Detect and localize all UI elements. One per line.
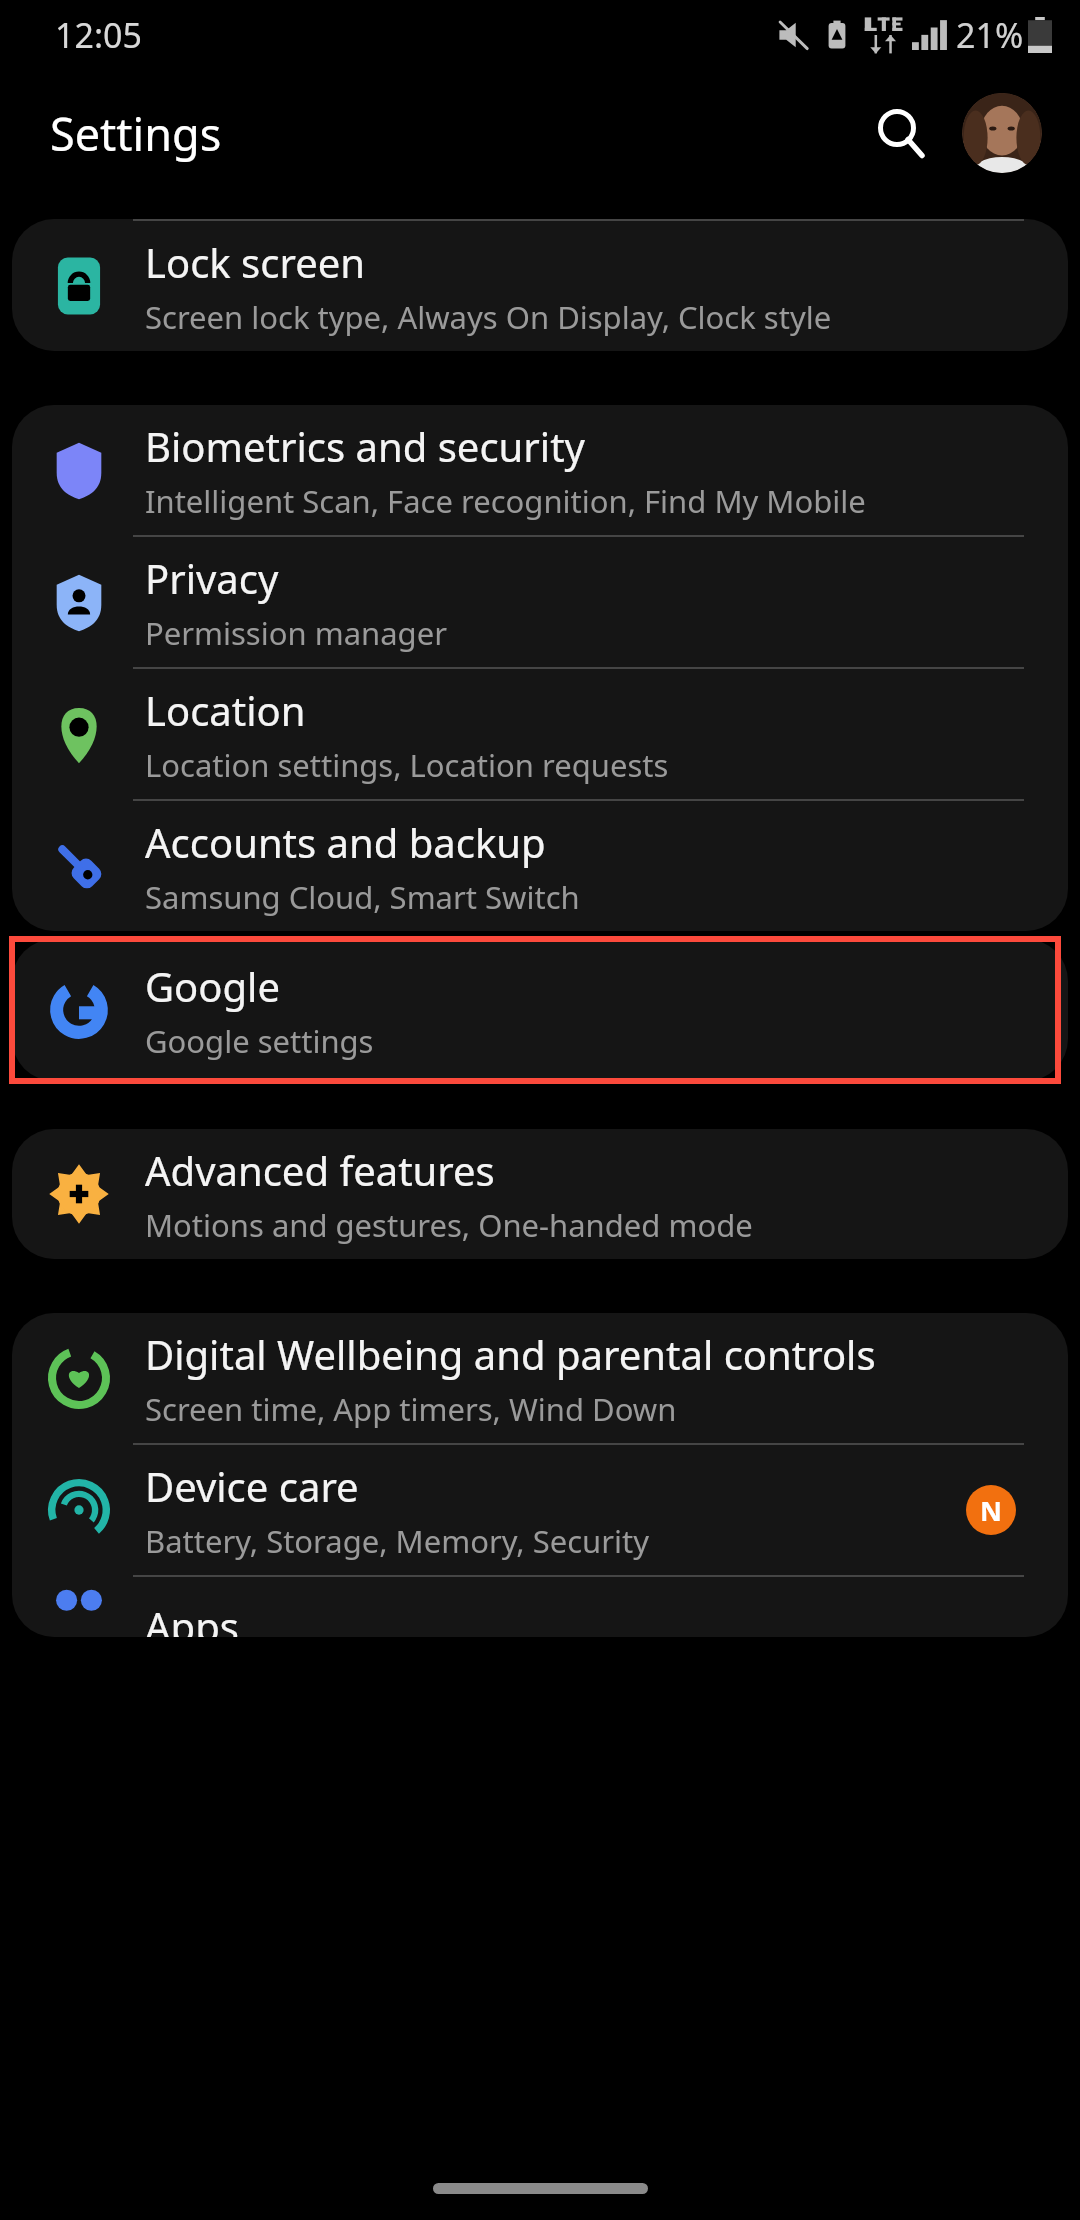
button[interactable]: Biometrics and security [12,405,1068,537]
button[interactable]: Device care [12,1445,1068,1577]
staticText: Screen time, App timers, Wind Down [145,1388,677,1430]
button[interactable]: Digital Wellbeing and parental controls [12,1313,1068,1445]
button[interactable]: Account [962,93,1042,173]
staticText: Apps [145,1599,239,1637]
staticText: Location [145,683,306,737]
staticText: Advanced features [145,1143,495,1197]
staticText: Accounts and backup [145,815,546,869]
button[interactable]: Location [12,669,1068,801]
staticText: 21% [956,12,1024,58]
button[interactable]: Google [12,939,1068,1081]
button[interactable]: Search [858,90,944,176]
staticText: 12:05 [55,12,142,58]
staticText: Biometrics and security [145,419,585,473]
staticText: Lock screen [145,235,366,289]
staticText: Screen lock type, Always On Display, Clo… [145,296,832,338]
staticText: Location settings, Location requests [145,744,669,786]
staticText: Settings [50,103,222,164]
button[interactable]: Advanced features [12,1129,1068,1259]
button[interactable]: Accounts and backup [12,801,1068,931]
staticText: Battery, Storage, Memory, Security [145,1520,650,1562]
staticText: Permission manager [145,612,447,654]
button[interactable]: Apps [12,1577,1068,1637]
staticText: Google settings [145,1020,374,1062]
staticText: Motions and gestures, One-handed mode [145,1204,753,1246]
staticText: Samsung Cloud, Smart Switch [145,876,580,918]
staticText: Google [145,959,280,1013]
staticText: Device care [145,1459,359,1513]
staticText: Digital Wellbeing and parental controls [145,1327,876,1381]
staticText: Intelligent Scan, Face recognition, Find… [145,480,866,522]
button[interactable]: Privacy [12,537,1068,669]
staticText: N [980,1492,1002,1529]
button[interactable]: Lock screen [12,219,1068,351]
staticText: Privacy [145,551,279,605]
